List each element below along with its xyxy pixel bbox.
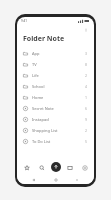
button[interactable]: App: [17, 48, 94, 59]
button[interactable]: Life: [17, 70, 94, 81]
staticText: TV: [32, 62, 37, 67]
staticText: 4: [85, 84, 88, 89]
button[interactable]: To Do List: [17, 136, 94, 147]
staticText: Home: [32, 95, 44, 100]
button[interactable]: Search: [36, 162, 47, 173]
button[interactable]: Favorites: [21, 162, 32, 173]
button[interactable]: Home: [17, 92, 94, 103]
staticText: Instapad: [32, 117, 49, 122]
button[interactable]: TV: [17, 59, 94, 70]
button[interactable]: Back: [73, 176, 81, 184]
button[interactable]: Shopping List: [17, 125, 94, 136]
staticText: Secret Note: [32, 106, 54, 111]
staticText: To Do List: [32, 139, 51, 144]
button[interactable]: Add note: [51, 162, 61, 172]
staticText: 8: [85, 62, 88, 67]
staticText: Life: [32, 73, 39, 78]
button[interactable]: More options: [83, 27, 89, 33]
button[interactable]: Archive: [64, 162, 75, 173]
staticText: 5: [85, 139, 88, 144]
staticText: 6: [85, 106, 88, 111]
button[interactable]: Instapad: [17, 114, 94, 125]
staticText: Shopping List: [32, 128, 58, 133]
staticText: 1: [85, 95, 88, 100]
button[interactable]: Home: [52, 176, 60, 184]
staticText: 2: [85, 73, 88, 78]
staticText: 9:41: [21, 19, 27, 23]
staticText: 3: [85, 51, 88, 56]
staticText: 9: [85, 117, 88, 122]
staticText: App: [32, 51, 40, 56]
staticText: 2: [85, 128, 88, 133]
button[interactable]: Recents: [30, 176, 38, 184]
button[interactable]: School: [17, 81, 94, 92]
button[interactable]: Secret Note: [17, 103, 94, 114]
staticText: Folder Note: [23, 34, 65, 44]
button[interactable]: Settings: [79, 162, 90, 173]
staticText: School: [32, 84, 45, 89]
